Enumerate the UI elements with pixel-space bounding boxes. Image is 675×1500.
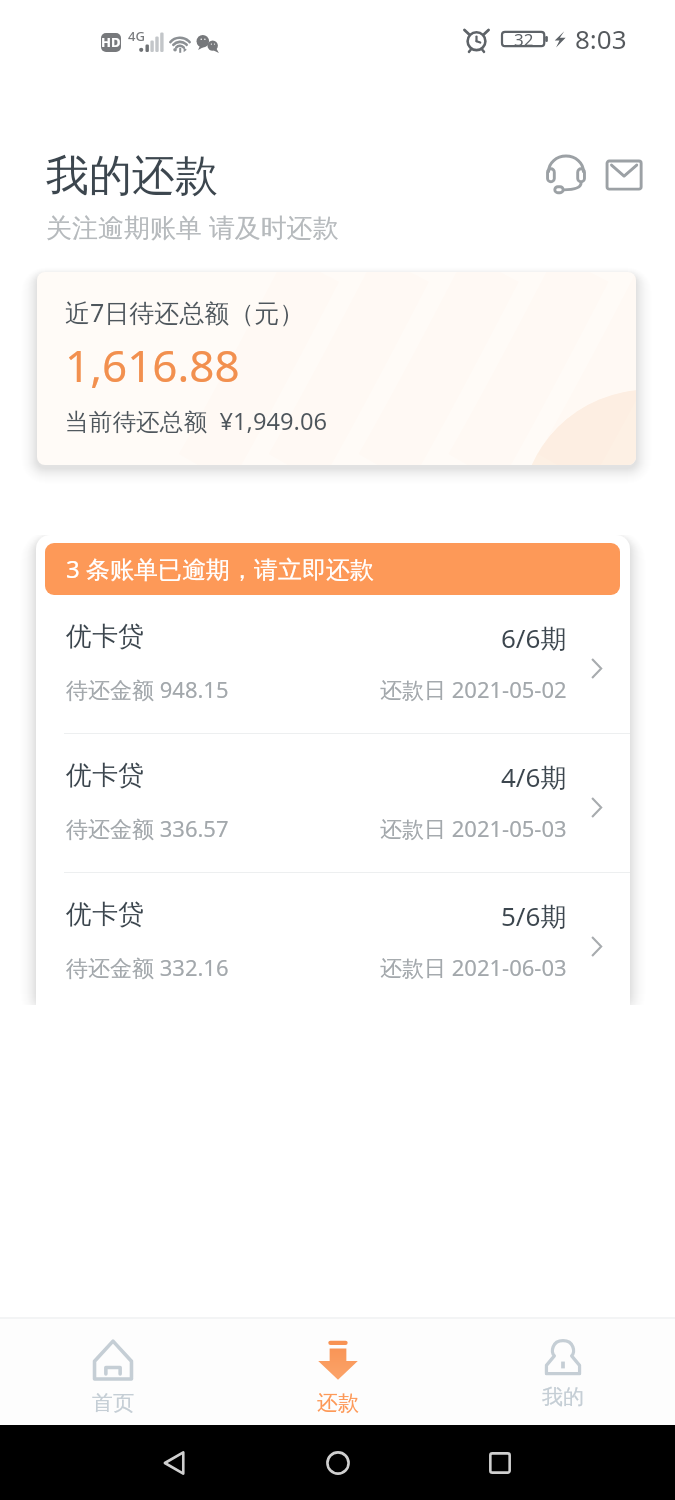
staticText: 还款 bbox=[317, 1390, 359, 1416]
staticText: 当前待还总额 ¥1,949.06 bbox=[65, 405, 327, 437]
staticText: 还款日 2021-05-03 bbox=[380, 813, 567, 843]
staticText: 待还金额 336.57 bbox=[66, 813, 229, 843]
staticText: 近7日待还总额（元） bbox=[65, 295, 305, 329]
button[interactable]: Back bbox=[152, 1440, 198, 1486]
button[interactable]: 首页 bbox=[0, 1319, 225, 1425]
staticText: 3 条账单已逾期，请立即还款 bbox=[66, 552, 374, 585]
button[interactable]: 我的 bbox=[450, 1319, 675, 1425]
button[interactable]: 优卡贷 bbox=[36, 873, 630, 985]
button[interactable]: 近7日待还总额（元） bbox=[37, 272, 636, 465]
staticText: 我的 bbox=[542, 1384, 584, 1410]
staticText: 8:03 bbox=[575, 21, 627, 56]
staticText: 待还金额 332.16 bbox=[66, 952, 229, 982]
staticText: 6/6期 bbox=[501, 620, 567, 656]
button[interactable]: Recents bbox=[477, 1440, 523, 1486]
staticText: 1,616.88 bbox=[65, 335, 240, 395]
staticText: 5/6期 bbox=[501, 898, 567, 934]
staticText: 我的还款 bbox=[46, 149, 218, 203]
staticText: 优卡贷 bbox=[66, 898, 144, 931]
staticText: 首页 bbox=[92, 1390, 134, 1416]
staticText: 还款日 2021-06-03 bbox=[380, 952, 567, 982]
staticText: HD bbox=[101, 33, 121, 51]
staticText: 4/6期 bbox=[501, 759, 567, 795]
button[interactable]: Messages bbox=[600, 154, 648, 202]
staticText: 待还金额 948.15 bbox=[66, 674, 229, 704]
button[interactable]: 还款 bbox=[225, 1319, 450, 1425]
button[interactable]: 优卡贷 bbox=[36, 595, 630, 734]
staticText: 32 bbox=[514, 28, 534, 51]
staticText: 优卡贷 bbox=[66, 620, 144, 653]
button[interactable]: Home bbox=[315, 1440, 361, 1486]
button[interactable]: 3 条账单已逾期，请立即还款 bbox=[45, 543, 620, 595]
staticText: 关注逾期账单 请及时还款 bbox=[46, 209, 339, 245]
staticText: 还款日 2021-05-02 bbox=[380, 674, 567, 704]
staticText: 4G bbox=[128, 27, 145, 45]
button[interactable]: Customer service bbox=[540, 148, 592, 200]
button[interactable]: 优卡贷 bbox=[36, 734, 630, 873]
staticText: 优卡贷 bbox=[66, 759, 144, 792]
